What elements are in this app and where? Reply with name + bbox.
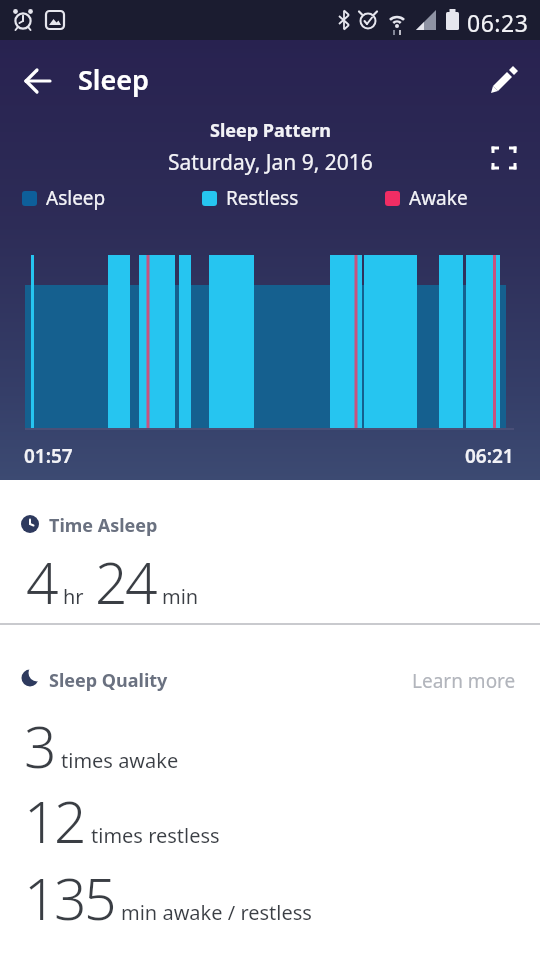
staticText: 24 [95,543,156,621]
staticText: Time Asleep [49,513,158,538]
staticText: 12 [24,782,85,860]
staticText: min [162,583,199,610]
staticText: 06:23 [467,7,529,38]
staticText: Awake [409,185,468,211]
staticText: Saturday, Jan 9, 2016 [168,148,373,177]
staticText: times awake [61,747,179,774]
staticText: 01:57 [24,443,73,469]
staticText: Asleep [46,185,106,211]
staticText: min awake / restless [121,899,312,926]
staticText: Sleep Pattern [210,118,331,143]
staticText: 3 [24,707,55,785]
staticText: Sleep [78,61,149,98]
staticText: Sleep Quality [49,668,168,693]
button[interactable] [12,64,62,98]
button[interactable]: Learn more [412,668,516,694]
staticText: times restless [91,822,220,849]
button[interactable] [484,138,524,178]
button[interactable] [486,58,526,102]
staticText: 06:21 [465,443,514,469]
staticText: 135 [24,859,115,937]
staticText: Restless [226,185,299,211]
staticText: hr [63,583,84,610]
staticText: 4 [26,543,57,621]
